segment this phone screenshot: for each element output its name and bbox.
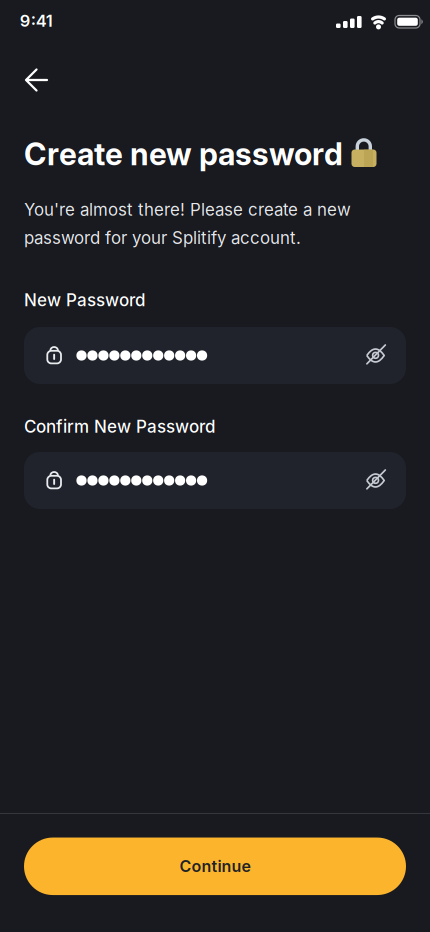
staticText: password for your Splitify account.	[24, 228, 301, 248]
staticText: New Password	[24, 290, 146, 310]
staticText: 9:41	[20, 11, 53, 31]
staticText: Confirm New Password	[24, 416, 216, 437]
button[interactable]: Show password	[353, 458, 397, 502]
staticText: You're almost there! Please create a new	[24, 200, 351, 220]
button[interactable]: Continue	[24, 837, 406, 895]
staticText: Create new password	[24, 136, 343, 172]
button[interactable]: Show password	[353, 333, 397, 377]
staticText: Continue	[179, 857, 250, 876]
button[interactable]: Back	[16, 58, 60, 102]
